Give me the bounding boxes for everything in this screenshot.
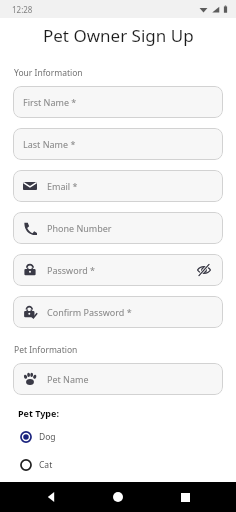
staticText: Cat xyxy=(39,459,53,471)
button[interactable]: Dog xyxy=(20,427,56,447)
staticText: Password * xyxy=(47,264,96,276)
staticText: Pet Name xyxy=(47,373,89,385)
button[interactable]: Home xyxy=(103,482,133,512)
staticText: Dog xyxy=(39,431,56,443)
button[interactable]: First Name * xyxy=(13,86,223,118)
button[interactable]: Back xyxy=(37,482,67,512)
staticText: Pet Type: xyxy=(18,407,59,419)
button[interactable]: Recent apps xyxy=(170,482,200,512)
button[interactable]: Confirm Password * xyxy=(13,296,223,328)
button[interactable]: Last Name * xyxy=(13,128,223,160)
staticText: Phone Number xyxy=(47,222,112,234)
button[interactable]: Phone Number xyxy=(13,212,223,244)
staticText: Pet Owner Sign Up xyxy=(43,24,194,47)
button[interactable]: Password * xyxy=(13,254,223,286)
staticText: Your Information xyxy=(14,67,83,79)
button[interactable]: Toggle password visibility xyxy=(195,261,213,279)
button[interactable]: Cat xyxy=(20,455,53,475)
staticText: Confirm Password * xyxy=(47,306,132,318)
staticText: 12:28 xyxy=(12,4,33,15)
staticText: Pet Information xyxy=(14,344,78,356)
button[interactable]: Pet Name xyxy=(13,363,223,395)
staticText: Email * xyxy=(47,180,78,192)
button[interactable]: Email * xyxy=(13,170,223,202)
staticText: Last Name * xyxy=(23,138,76,150)
staticText: First Name * xyxy=(23,96,77,108)
